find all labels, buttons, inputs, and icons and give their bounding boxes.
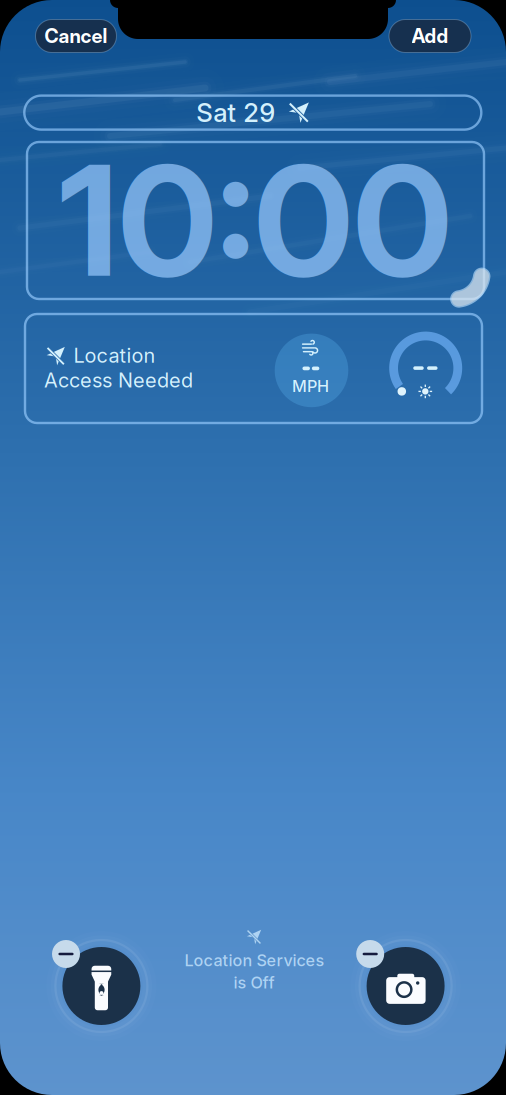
staticText: Sat 29 bbox=[196, 97, 275, 128]
staticText: MPH bbox=[292, 376, 329, 396]
button[interactable]: Flashlight bbox=[62, 947, 140, 1025]
button[interactable]: Speed bbox=[275, 334, 348, 407]
button[interactable]: 10:00 bbox=[27, 142, 484, 299]
button[interactable]: Brightness bbox=[388, 331, 463, 406]
staticText: Location bbox=[73, 343, 155, 368]
button[interactable]: Remove Flashlight bbox=[52, 940, 80, 968]
button[interactable]: Remove Camera bbox=[356, 940, 384, 968]
staticText: Location Services bbox=[184, 950, 324, 970]
button[interactable]: Location bbox=[44, 342, 194, 394]
button[interactable]: Camera bbox=[367, 947, 445, 1025]
staticText: Add bbox=[411, 24, 448, 48]
button[interactable]: Cancel bbox=[35, 19, 116, 52]
staticText: 10:00 bbox=[59, 128, 452, 312]
button[interactable]: Add bbox=[389, 19, 471, 52]
staticText: Cancel bbox=[44, 24, 107, 48]
staticText: is Off bbox=[233, 973, 274, 992]
button[interactable]: Sat 29 bbox=[24, 96, 481, 130]
staticText: Access Needed bbox=[44, 368, 193, 392]
